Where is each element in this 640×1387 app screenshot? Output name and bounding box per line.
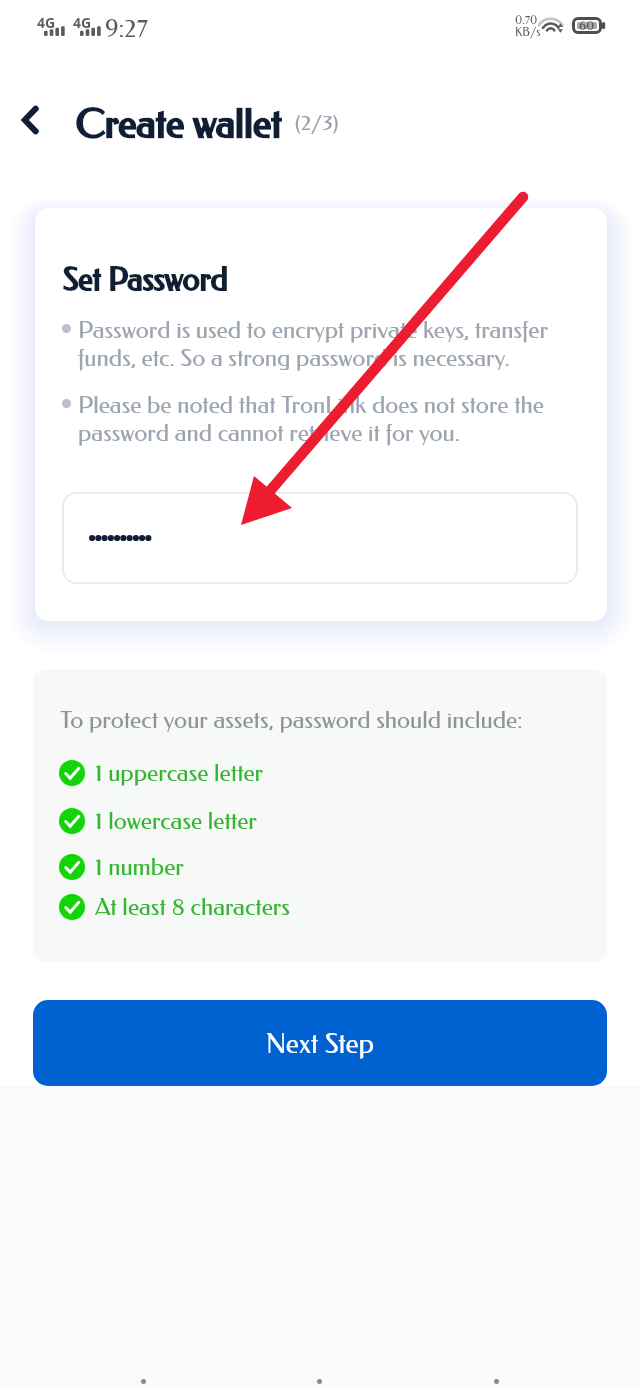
staticText: 1 uppercase letter bbox=[95, 759, 264, 787]
staticText: 1 lowercase letter bbox=[95, 807, 257, 835]
button[interactable]: 1 number bbox=[59, 850, 184, 884]
staticText: Set Password bbox=[63, 261, 228, 298]
staticText: (2/3) bbox=[295, 111, 339, 136]
staticText: 9:27 bbox=[105, 14, 148, 43]
staticText: 4G bbox=[37, 13, 56, 32]
staticText: 1 number bbox=[95, 853, 184, 881]
staticText: 0.70 bbox=[515, 13, 538, 27]
button[interactable]: Password bbox=[62, 492, 578, 584]
staticText: KB/s bbox=[515, 25, 541, 39]
staticText: Please be noted that TronLink does not s… bbox=[78, 391, 560, 447]
staticText: Next Step bbox=[266, 1027, 375, 1060]
staticText: 4G bbox=[73, 13, 92, 32]
staticText: 60 bbox=[579, 18, 595, 33]
button[interactable]: Next Step bbox=[33, 1000, 607, 1086]
staticText: To protect your assets, password should … bbox=[60, 706, 523, 734]
button[interactable]: Back bbox=[2, 92, 58, 148]
button[interactable]: At least 8 characters bbox=[59, 890, 290, 924]
staticText: Create wallet bbox=[76, 101, 282, 147]
staticText: At least 8 characters bbox=[95, 893, 290, 921]
button[interactable]: 1 lowercase letter bbox=[59, 804, 257, 838]
button[interactable]: 1 uppercase letter bbox=[59, 756, 264, 790]
staticText: Set Password bbox=[63, 261, 228, 298]
staticText: Password is used to encrypt private keys… bbox=[78, 316, 560, 372]
staticText: Create wallet bbox=[76, 101, 282, 147]
